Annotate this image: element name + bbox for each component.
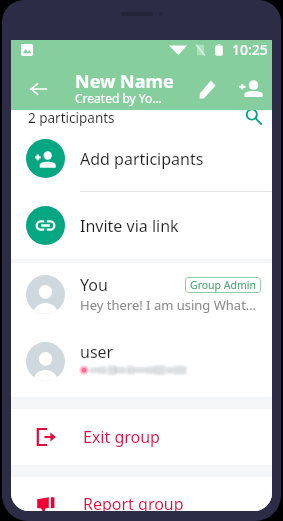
button[interactable]: Invite via link	[11, 192, 272, 259]
button[interactable]: Add participant	[233, 67, 269, 103]
button[interactable]: Add participants	[11, 126, 272, 191]
button[interactable]: You	[11, 263, 272, 332]
button[interactable]: Back	[19, 66, 57, 104]
staticText: Created by Yo…	[75, 90, 162, 106]
staticText: Group Admin	[190, 278, 256, 292]
staticText: Report group	[83, 493, 184, 511]
button[interactable]: Search	[243, 107, 263, 126]
button[interactable]: user	[11, 332, 272, 397]
button[interactable]: Exit group	[11, 409, 272, 465]
staticText: New Name	[75, 69, 174, 94]
staticText: user	[80, 341, 114, 363]
staticText: Exit group	[83, 426, 160, 448]
button[interactable]: Report group	[11, 477, 272, 511]
button[interactable]: Edit group name	[189, 67, 225, 103]
staticText: 10:25	[232, 40, 268, 59]
staticText: You	[80, 274, 108, 296]
staticText: Invite via link	[80, 215, 179, 237]
staticText: Hey there! I am using Whats…	[80, 296, 261, 314]
staticText: Add participants	[80, 148, 204, 170]
staticText: 2 participants	[28, 109, 115, 126]
